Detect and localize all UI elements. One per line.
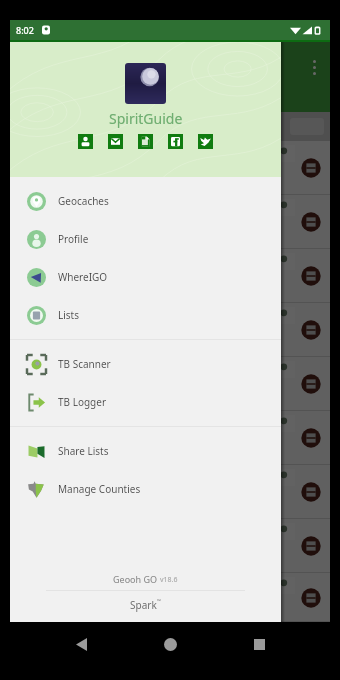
staticText: Profile bbox=[58, 232, 89, 246]
button[interactable]: Email bbox=[108, 134, 123, 149]
staticText: Manage Counties bbox=[58, 482, 141, 496]
staticText: ™ bbox=[157, 598, 161, 605]
staticText: 8:02 bbox=[16, 24, 34, 36]
button[interactable]: WhereIGO bbox=[10, 258, 281, 296]
staticText: Lists bbox=[58, 308, 80, 322]
staticText: TB Scanner bbox=[58, 357, 111, 371]
button[interactable]: Facebook bbox=[168, 134, 183, 149]
button[interactable]: Profile bbox=[10, 220, 281, 258]
button[interactable]: Lists bbox=[10, 296, 281, 334]
staticText: Geooh GO bbox=[113, 573, 160, 585]
staticText: v18.6 bbox=[160, 575, 178, 585]
button[interactable]: Twitter bbox=[198, 134, 213, 149]
button[interactable]: TB Logger bbox=[10, 383, 281, 421]
button[interactable]: Manage Counties bbox=[10, 470, 281, 508]
staticText: Share Lists bbox=[58, 444, 109, 458]
staticText: Geocaches bbox=[58, 194, 109, 208]
button[interactable]: Recents bbox=[248, 633, 270, 655]
staticText: TB Logger bbox=[58, 395, 107, 409]
button[interactable]: Share Lists bbox=[10, 432, 281, 470]
staticText: WhereIGO bbox=[58, 270, 108, 284]
button[interactable]: Back bbox=[70, 633, 92, 655]
button[interactable]: TB Scanner bbox=[10, 345, 281, 383]
button[interactable]: Docs bbox=[138, 134, 153, 149]
button[interactable]: Geocaches bbox=[10, 182, 281, 220]
button[interactable]: Contact bbox=[78, 134, 93, 149]
staticText: SpiritGuide bbox=[109, 109, 183, 128]
button[interactable]: Home bbox=[159, 633, 181, 655]
staticText: Spark bbox=[130, 598, 157, 612]
